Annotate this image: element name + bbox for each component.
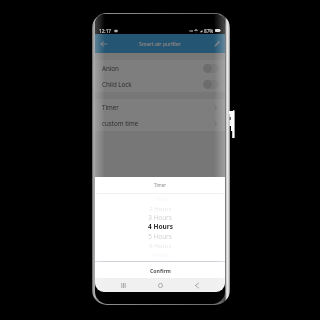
button[interactable]: Anion [95,60,225,76]
button[interactable]: Home [148,278,172,292]
button[interactable]: Rename device [208,34,225,53]
staticText: 2 Hours [149,204,172,212]
staticText: 3 Hours [148,213,172,222]
button[interactable]: Back [185,278,209,292]
button[interactable]: custom time [95,115,225,131]
staticText: 6 Hours [149,241,172,249]
staticText: Child Lock [102,80,132,88]
staticText: 12:17 [99,28,112,34]
staticText: Anion [102,64,119,72]
staticText: 87% [204,28,214,34]
button[interactable]: Navigate back [95,34,112,53]
button[interactable]: 4 Hours [95,222,225,231]
button[interactable]: Timer [95,99,225,115]
staticText: 5 Hours [148,232,172,241]
staticText: Timer [102,103,119,111]
staticText: custom time [102,119,139,127]
staticText: Smart air purifier [139,40,181,47]
staticText: 4 Hours [148,222,173,231]
button[interactable]: Child Lock switch [203,80,219,89]
button[interactable]: Confirm [95,262,225,278]
button[interactable]: 3 Hours [95,213,225,222]
button[interactable]: 5 Hours [95,232,225,241]
button[interactable]: Recent apps [111,278,135,292]
button[interactable]: Anion switch [203,64,219,73]
staticText: Timer [154,182,166,188]
staticText: Confirm [150,267,171,274]
button[interactable]: Child Lock [95,76,225,92]
